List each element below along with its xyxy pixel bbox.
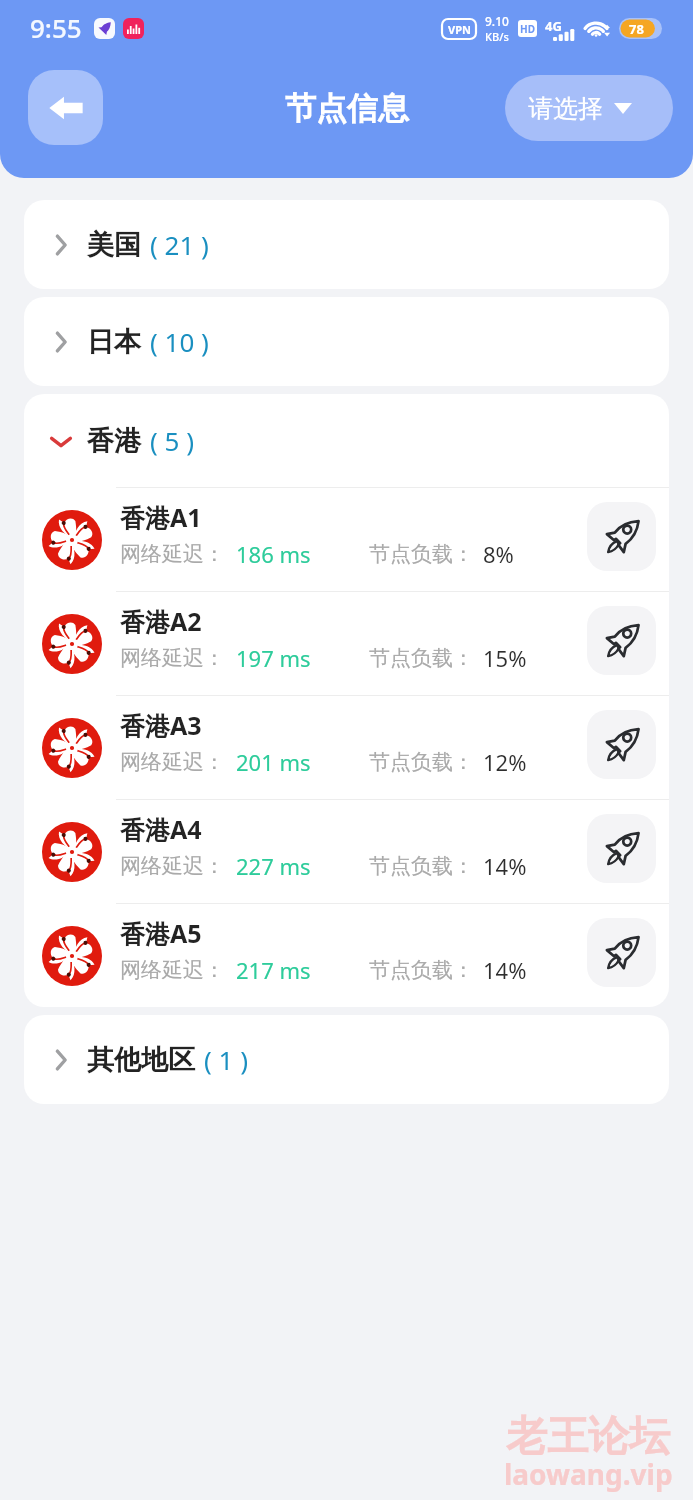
staticText: 网络延迟： (120, 749, 225, 775)
staticText: ( 1 ) (204, 1042, 248, 1077)
staticText: 15% (483, 643, 527, 673)
staticText: 网络延迟： (120, 853, 225, 879)
button[interactable]: 美国 (24, 200, 669, 289)
button[interactable]: 其他地区 (24, 1015, 669, 1104)
staticText: 老王论坛 (506, 1411, 670, 1463)
staticText: ( 21 ) (150, 227, 209, 262)
staticText: 4G (545, 17, 562, 35)
button[interactable]: 香港A3 (24, 696, 669, 799)
staticText: 节点负载： (369, 853, 474, 879)
button[interactable]: Connect (587, 710, 656, 779)
staticText: 9:55 (30, 10, 82, 45)
staticText: 香港 (87, 424, 141, 458)
staticText: 227 ms (236, 851, 311, 881)
staticText: ( 10 ) (150, 324, 209, 359)
staticText: 201 ms (236, 747, 311, 777)
staticText: 8% (483, 539, 514, 569)
staticText: HD (520, 22, 535, 36)
staticText: 香港A1 (120, 500, 202, 534)
staticText: 其他地区 (87, 1043, 195, 1077)
button[interactable]: 香港A5 (24, 904, 669, 1007)
button[interactable]: 香港A1 (24, 488, 669, 591)
button[interactable]: Connect (587, 502, 656, 571)
staticText: 节点负载： (369, 645, 474, 671)
staticText: 节点负载： (369, 541, 474, 567)
button[interactable]: 香港 (24, 394, 669, 487)
staticText: 网络延迟： (120, 541, 225, 567)
staticText: 香港A2 (120, 604, 202, 638)
staticText: 14% (483, 955, 527, 985)
staticText: 节点负载： (369, 957, 474, 983)
staticText: 日本 (87, 325, 141, 359)
staticText: laowang.vip (504, 1455, 673, 1493)
staticText: KB/s (485, 29, 509, 44)
staticText: VPN (448, 22, 471, 37)
button[interactable]: 香港A4 (24, 800, 669, 903)
staticText: 请选择 (528, 93, 603, 124)
button[interactable]: 请选择 (505, 75, 673, 141)
staticText: 网络延迟： (120, 957, 225, 983)
staticText: 186 ms (236, 539, 311, 569)
staticText: 网络延迟： (120, 645, 225, 671)
staticText: ( 5 ) (150, 423, 194, 458)
button[interactable]: 日本 (24, 297, 669, 386)
staticText: 香港A5 (120, 916, 202, 950)
button[interactable]: Connect (587, 814, 656, 883)
staticText: 节点信息 (285, 89, 409, 128)
staticText: 197 ms (236, 643, 311, 673)
staticText: 78 (629, 20, 644, 38)
staticText: 9.10 (485, 13, 509, 29)
staticText: 217 ms (236, 955, 311, 985)
button[interactable]: 香港A2 (24, 592, 669, 695)
staticText: 12% (483, 747, 527, 777)
button[interactable]: Connect (587, 606, 656, 675)
button[interactable]: Connect (587, 918, 656, 987)
staticText: 香港A4 (120, 812, 202, 846)
staticText: 14% (483, 851, 527, 881)
staticText: 美国 (87, 228, 141, 262)
staticText: 节点负载： (369, 749, 474, 775)
staticText: 香港A3 (120, 708, 202, 742)
button[interactable]: Back (28, 70, 103, 145)
